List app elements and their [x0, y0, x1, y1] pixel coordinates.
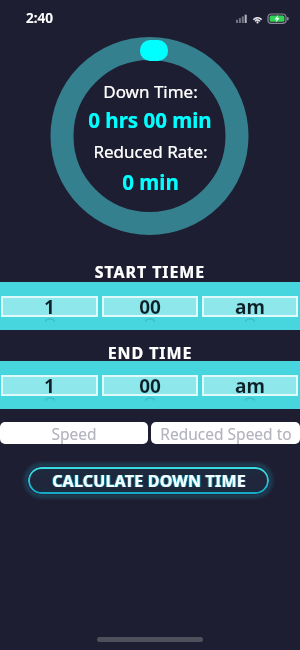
- staticText: am: [235, 294, 265, 315]
- staticText: Reduced Speed to: [160, 423, 292, 444]
- button[interactable]: Reduced Speed to: [151, 422, 300, 444]
- button[interactable]: am: [202, 282, 298, 322]
- other: Status icons: [236, 14, 288, 24]
- staticText: 0 min: [122, 168, 179, 196]
- staticText: 00: [139, 294, 161, 315]
- staticText: CALCULATE DOWN TIME: [53, 470, 247, 492]
- staticText: END TIME: [0, 342, 300, 364]
- button[interactable]: Speed: [0, 422, 148, 444]
- staticText: 1: [44, 294, 55, 315]
- staticText: CALCULATE DOWN TIME: [51, 470, 245, 492]
- staticText: 0 hrs 00 min: [88, 106, 212, 134]
- button[interactable]: 00: [102, 361, 198, 401]
- staticText: 1: [44, 373, 55, 394]
- button[interactable]: 1: [1, 361, 98, 401]
- staticText: Speed: [51, 423, 97, 444]
- staticText: Reduced Rate:: [93, 140, 208, 163]
- button[interactable]: 00: [102, 282, 198, 322]
- staticText: am: [235, 373, 265, 394]
- staticText: CALCULATE DOWN TIME: [52, 470, 246, 492]
- button[interactable]: 1: [1, 282, 98, 322]
- button[interactable]: am: [202, 361, 298, 401]
- button[interactable]: CALCULATE DOWN TIME: [28, 467, 269, 494]
- staticText: Down Time:: [103, 80, 198, 103]
- staticText: 00: [139, 373, 161, 394]
- staticText: START TIEME: [0, 261, 300, 283]
- staticText: 2:40: [26, 9, 53, 27]
